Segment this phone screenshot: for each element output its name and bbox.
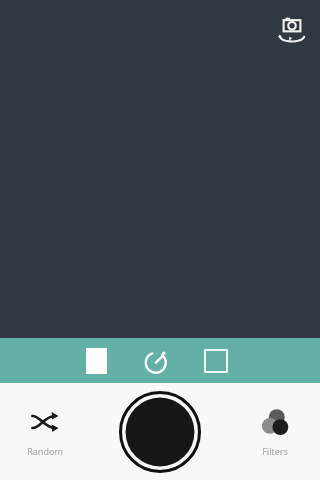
button[interactable]: Random (0, 383, 90, 480)
staticText: Filters (262, 445, 288, 457)
button[interactable]: Filters (230, 383, 320, 480)
button[interactable]: Timer (134, 339, 178, 383)
button[interactable]: Aspect ratio (194, 339, 238, 383)
button[interactable]: Photo mode (74, 339, 118, 383)
staticText: Random (27, 445, 63, 457)
button[interactable]: Switch camera (272, 8, 312, 48)
button[interactable]: Shutter (114, 386, 206, 478)
